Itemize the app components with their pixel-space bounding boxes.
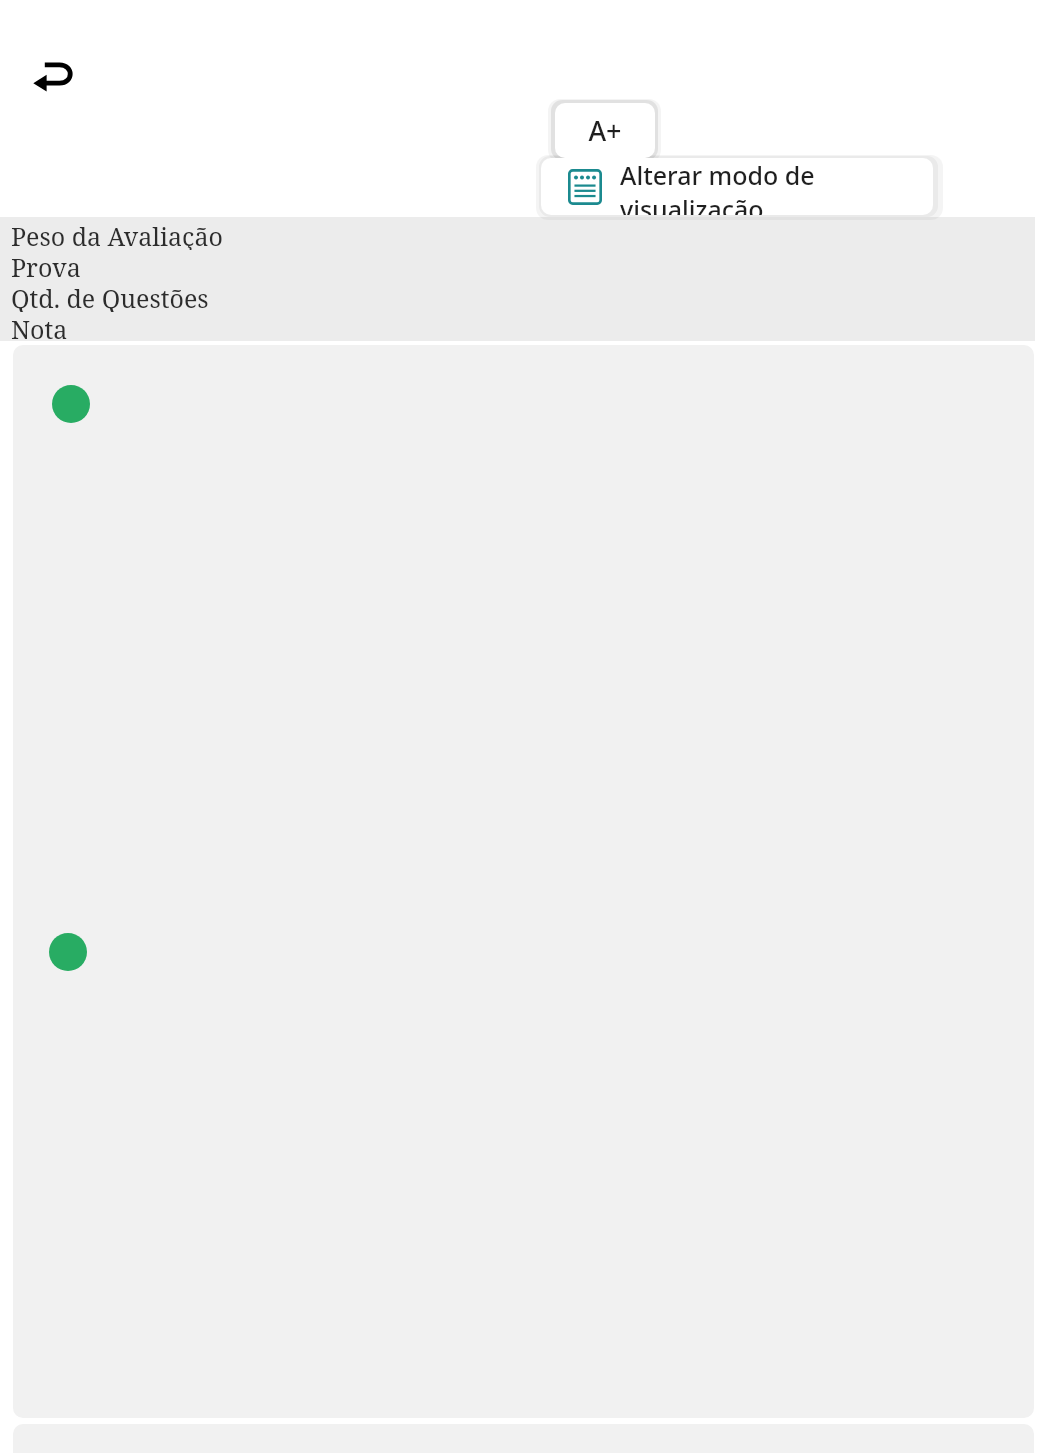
staticText: Peso da Avaliação <box>11 219 223 250</box>
button[interactable]: Status concluído <box>52 385 90 423</box>
staticText: Qtd. de Questões <box>11 281 209 312</box>
staticText: Prova <box>11 250 81 281</box>
button[interactable]: A+ <box>555 103 655 158</box>
button[interactable]: Alterar modo de visualização <box>541 158 933 215</box>
staticText: Nota <box>11 312 68 343</box>
button[interactable]: Status concluído <box>49 933 87 971</box>
staticText: Alterar modo de visualização <box>620 158 933 215</box>
button[interactable]: Voltar <box>22 42 86 106</box>
staticText: A+ <box>588 112 622 149</box>
